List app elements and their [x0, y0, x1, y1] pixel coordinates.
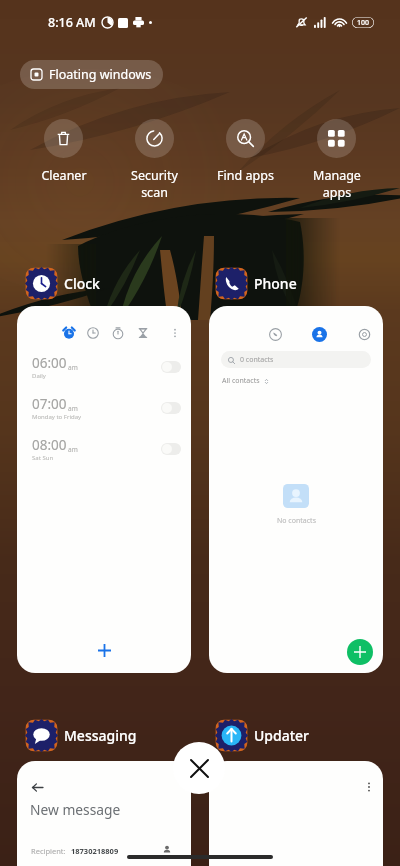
staticText: 100 [357, 18, 370, 28]
staticText: Floating windows [49, 66, 152, 83]
staticText: Security scan [131, 167, 178, 201]
staticText: Sat Sun [32, 454, 54, 462]
button[interactable]: Security scan [109, 119, 200, 201]
staticText: No contacts [277, 516, 316, 526]
staticText: am [68, 363, 78, 372]
staticText: All contacts [222, 376, 260, 386]
button[interactable]: Manage apps [291, 119, 382, 201]
staticText: 06:00 [32, 354, 67, 372]
button[interactable]: 06:00 [17, 306, 191, 673]
staticText: am [68, 445, 78, 454]
button[interactable] [209, 761, 383, 866]
staticText: 07:00 [32, 395, 67, 413]
button[interactable]: Close all [173, 742, 225, 794]
staticText: Manage apps [313, 167, 361, 201]
button[interactable]: 0 contacts [221, 351, 371, 368]
button[interactable]: Messaging [25, 719, 137, 752]
button[interactable]: Toggle alarm [161, 361, 181, 373]
staticText: Phone [254, 274, 297, 293]
button[interactable]: Phone [215, 267, 297, 300]
staticText: Messaging [64, 726, 137, 745]
staticText: Updater [254, 726, 310, 745]
staticText: Recipient: [31, 846, 66, 856]
button[interactable]: Add alarm [92, 638, 116, 662]
button[interactable]: Floating windows [20, 60, 163, 89]
button[interactable]: Add contact [347, 639, 373, 665]
button[interactable]: New message [17, 761, 191, 866]
button[interactable]: Updater [215, 719, 310, 752]
staticText: Daily [32, 372, 46, 380]
staticText: 18730218809 [71, 846, 119, 856]
staticText: 8:16 AM [48, 14, 96, 31]
button[interactable]: 0 contacts [209, 306, 383, 673]
staticText: Find apps [217, 167, 274, 184]
button[interactable]: Toggle alarm [161, 402, 181, 414]
button[interactable]: Toggle alarm [161, 443, 181, 455]
staticText: am [68, 404, 78, 413]
staticText: Monday to Friday [32, 413, 82, 421]
staticText: New message [30, 800, 121, 819]
staticText: 08:00 [32, 436, 67, 454]
staticText: Clock [64, 274, 100, 293]
button[interactable]: Cleaner [18, 119, 109, 184]
staticText: 0 contacts [240, 355, 274, 365]
button[interactable]: Clock [25, 267, 100, 300]
staticText: Cleaner [41, 167, 87, 184]
button[interactable]: Find apps [200, 119, 291, 184]
